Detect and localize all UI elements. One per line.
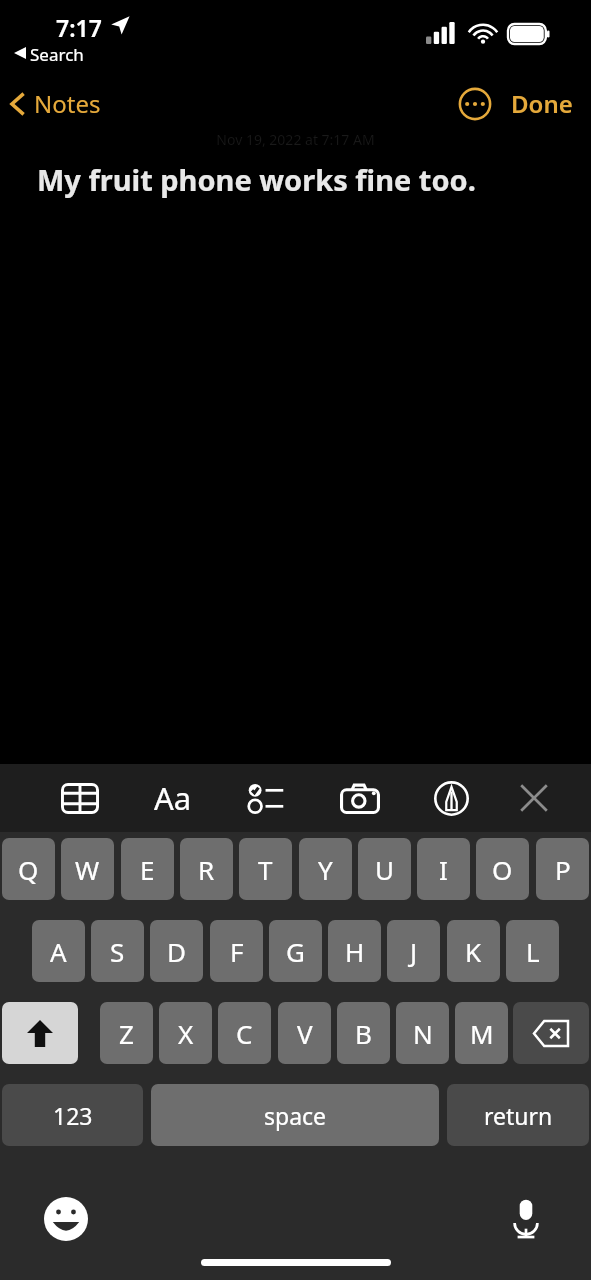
- button[interactable]: G: [269, 920, 322, 982]
- staticText: My fruit phone works fine too.: [37, 160, 476, 199]
- button[interactable]: H: [328, 920, 381, 982]
- button[interactable]: R: [180, 838, 233, 900]
- staticText: J: [410, 934, 418, 969]
- button[interactable]: S: [91, 920, 144, 982]
- staticText: N: [413, 1016, 433, 1051]
- staticText: K: [465, 934, 482, 969]
- staticText: 123: [53, 1100, 93, 1131]
- staticText: M: [470, 1016, 494, 1051]
- staticText: Nov 19, 2022 at 7:17 AM: [216, 130, 375, 149]
- staticText: Q: [18, 852, 39, 887]
- staticText: B: [355, 1016, 372, 1051]
- staticText: I: [439, 852, 448, 887]
- button[interactable]: Close keyboard: [508, 772, 560, 824]
- button[interactable]: L: [506, 920, 559, 982]
- button[interactable]: D: [150, 920, 203, 982]
- staticText: L: [526, 934, 540, 969]
- staticText: O: [492, 852, 513, 887]
- button[interactable]: 123: [2, 1084, 143, 1146]
- button[interactable]: A: [32, 920, 85, 982]
- button[interactable]: U: [358, 838, 411, 900]
- button[interactable]: K: [447, 920, 500, 982]
- staticText: H: [345, 934, 365, 969]
- button[interactable]: Shift: [2, 1002, 78, 1064]
- staticText: Notes: [34, 87, 101, 120]
- button[interactable]: Notes: [0, 83, 109, 124]
- button[interactable]: V: [278, 1002, 331, 1064]
- staticText: return: [484, 1100, 553, 1131]
- button[interactable]: B: [337, 1002, 390, 1064]
- staticText: E: [140, 852, 155, 887]
- button[interactable]: Emoji: [40, 1193, 92, 1245]
- staticText: D: [167, 934, 186, 969]
- button[interactable]: Markup: [425, 772, 477, 824]
- staticText: V: [297, 1016, 313, 1051]
- button[interactable]: J: [387, 920, 440, 982]
- button[interactable]: Q: [2, 838, 55, 900]
- staticText: Z: [119, 1016, 134, 1051]
- button[interactable]: O: [476, 838, 529, 900]
- staticText: G: [286, 934, 305, 969]
- button[interactable]: X: [159, 1002, 212, 1064]
- button[interactable]: E: [121, 838, 174, 900]
- button[interactable]: Z: [100, 1002, 153, 1064]
- button[interactable]: T: [239, 838, 292, 900]
- button[interactable]: Y: [299, 838, 352, 900]
- staticText: R: [198, 852, 215, 887]
- staticText: 7:17: [56, 12, 102, 43]
- staticText: T: [258, 852, 273, 887]
- staticText: Y: [318, 852, 333, 887]
- button[interactable]: P: [536, 838, 589, 900]
- staticText: Search: [30, 43, 84, 66]
- staticText: F: [230, 934, 244, 969]
- button[interactable]: Dictation: [500, 1193, 552, 1245]
- staticText: Done: [511, 87, 573, 120]
- staticText: space: [264, 1100, 327, 1131]
- button[interactable]: return: [447, 1084, 589, 1146]
- button[interactable]: Table: [54, 772, 106, 824]
- button[interactable]: F: [210, 920, 263, 982]
- button[interactable]: Checklist: [240, 772, 292, 824]
- button[interactable]: M: [455, 1002, 508, 1064]
- staticText: X: [178, 1016, 194, 1051]
- button[interactable]: I: [417, 838, 470, 900]
- staticText: S: [110, 934, 125, 969]
- staticText: Aa: [154, 777, 192, 819]
- button[interactable]: Backspace: [513, 1002, 589, 1064]
- staticText: W: [75, 852, 100, 887]
- staticText: P: [555, 852, 571, 887]
- staticText: A: [50, 934, 67, 969]
- button[interactable]: N: [396, 1002, 449, 1064]
- button[interactable]: C: [218, 1002, 271, 1064]
- button[interactable]: Camera: [334, 772, 386, 824]
- button[interactable]: Text format: [147, 772, 199, 824]
- button[interactable]: Done: [505, 81, 579, 126]
- button[interactable]: More options: [455, 84, 495, 124]
- button[interactable]: space: [151, 1084, 439, 1146]
- button[interactable]: W: [61, 838, 114, 900]
- staticText: U: [375, 852, 395, 887]
- staticText: C: [236, 1016, 253, 1051]
